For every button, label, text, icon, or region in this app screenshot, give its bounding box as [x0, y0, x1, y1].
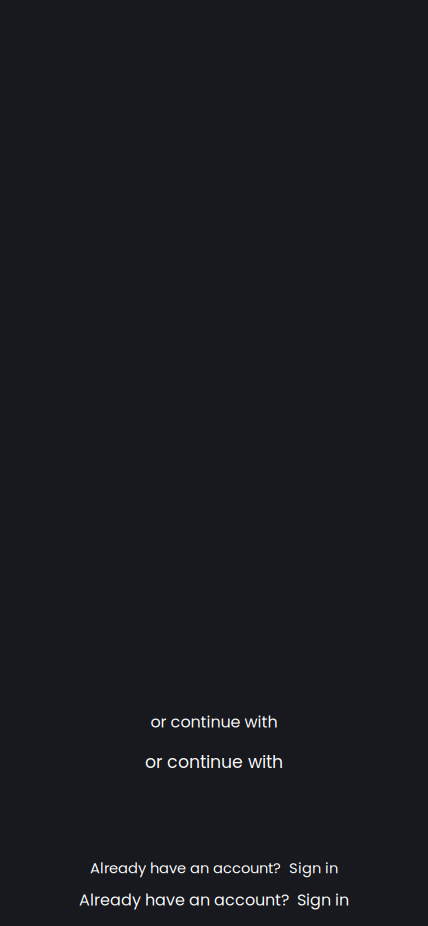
staticText: or continue with	[145, 750, 283, 774]
staticText: Already have an account? Sign in	[79, 889, 349, 911]
staticText: or continue with	[150, 711, 277, 733]
staticText: Already have an account? Sign in	[90, 858, 338, 878]
